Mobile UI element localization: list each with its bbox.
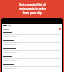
button[interactable]	[3, 40, 61, 48]
staticText: Get a curated list of restaurants in ord…	[19, 3, 46, 15]
button[interactable]	[3, 64, 61, 72]
button[interactable]	[3, 32, 61, 40]
button[interactable]	[3, 25, 61, 26]
button[interactable]	[3, 56, 61, 64]
button[interactable]	[3, 48, 61, 56]
